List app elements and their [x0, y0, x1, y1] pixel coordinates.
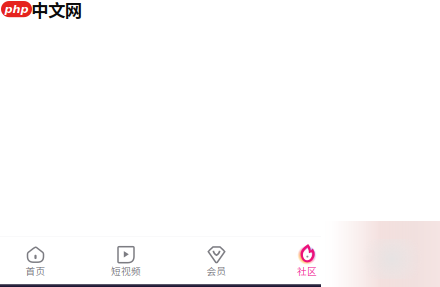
button[interactable]: 社区: [265, 240, 349, 284]
staticText: 短视频: [111, 264, 141, 278]
button[interactable]: 会员: [174, 240, 258, 284]
staticText: 中文网: [31, 0, 82, 22]
button[interactable]: 首页: [0, 240, 77, 284]
staticText: php: [4, 2, 28, 16]
button[interactable]: 短视频: [84, 240, 168, 284]
staticText: 社区: [297, 264, 317, 278]
staticText: 会员: [206, 264, 226, 278]
staticText: 首页: [25, 264, 45, 278]
